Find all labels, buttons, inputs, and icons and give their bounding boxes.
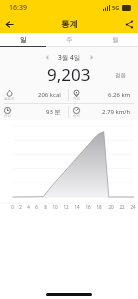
staticText: 24 xyxy=(130,204,136,210)
staticText: 12 xyxy=(63,204,69,210)
staticText: 93 분 xyxy=(46,108,61,116)
staticText: 시간 xyxy=(4,114,11,118)
staticText: 월 xyxy=(112,36,119,44)
staticText: 0 xyxy=(11,204,14,210)
staticText: 10 xyxy=(52,204,58,210)
button[interactable]: Previous day xyxy=(41,51,53,63)
button[interactable]: Share xyxy=(120,15,138,33)
button[interactable]: 칼로리 xyxy=(0,87,68,103)
staticText: 14 xyxy=(74,204,80,210)
staticText: 22 xyxy=(119,204,125,210)
button[interactable]: 일 xyxy=(0,33,46,46)
staticText: 206 kcal xyxy=(38,91,61,99)
staticText: 3월 4일 xyxy=(58,53,81,62)
staticText: 5G xyxy=(112,4,120,11)
button[interactable]: 거리 xyxy=(69,87,138,103)
button[interactable]: 주 xyxy=(46,33,92,46)
staticText: 9,203 xyxy=(47,63,91,83)
staticText: 일 xyxy=(20,36,27,44)
staticText: 16 xyxy=(85,204,91,210)
staticText: 6 xyxy=(35,204,38,210)
button[interactable]: Next day xyxy=(86,51,98,63)
staticText: 16:39 xyxy=(9,3,27,13)
staticText: 2 xyxy=(19,204,22,210)
staticText: 4 xyxy=(27,204,30,210)
button[interactable]: Back xyxy=(0,15,18,33)
staticText: 18 xyxy=(96,204,102,210)
staticText: 6.26 km xyxy=(108,91,131,99)
staticText: 주 xyxy=(66,36,73,44)
staticText: 칼로리 xyxy=(4,97,15,101)
button[interactable]: 속도 xyxy=(69,104,138,120)
staticText: 걸음 xyxy=(115,72,126,79)
staticText: 8 xyxy=(44,204,47,210)
staticText: 속도 xyxy=(73,114,80,118)
staticText: 20 xyxy=(108,204,114,210)
staticText: 통계 xyxy=(61,19,78,30)
staticText: 거리 xyxy=(73,97,80,101)
button[interactable]: 월 xyxy=(92,33,138,46)
button[interactable]: 시간 xyxy=(0,104,68,120)
staticText: 2.79 km/h xyxy=(102,108,131,116)
